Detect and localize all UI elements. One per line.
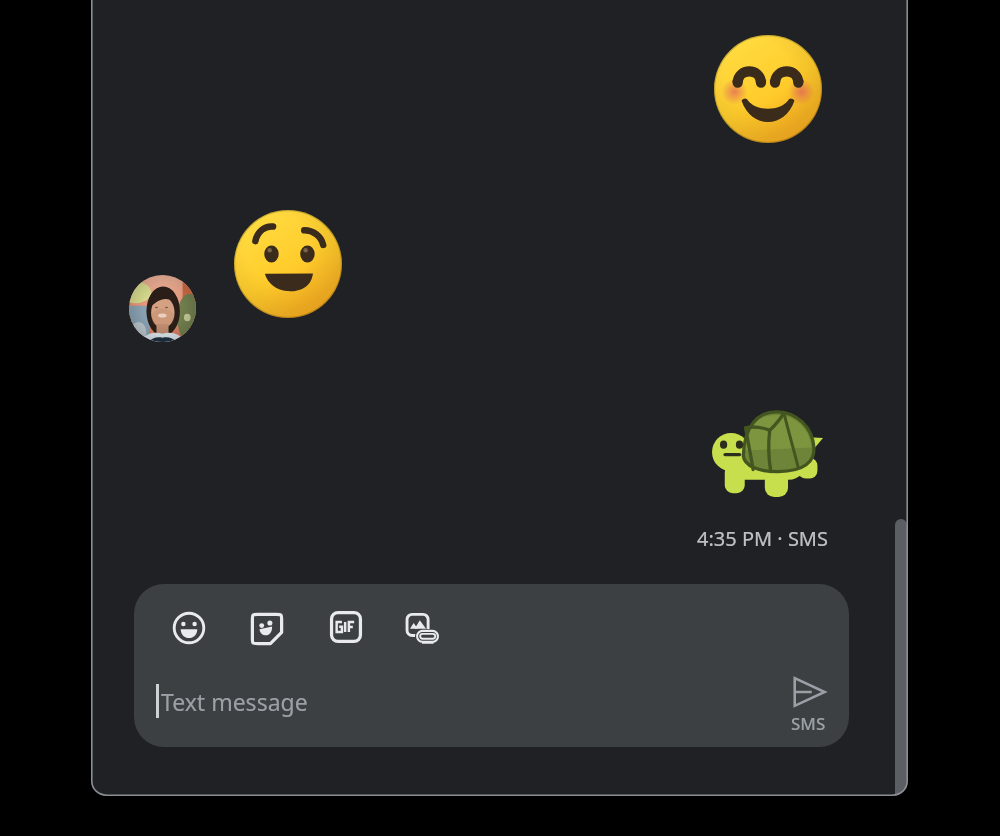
button[interactable]: Message: smiling face with smiling eyes [714,35,822,143]
button[interactable]: Message: turtle [712,411,823,497]
button[interactable]: Insert GIF [322,603,370,651]
button[interactable]: Send SMS [758,677,849,745]
button[interactable]: Insert sticker [243,605,291,653]
staticText: Text message [161,686,308,717]
button[interactable]: Message: slightly smiling face [234,210,342,318]
button[interactable]: Text message [156,670,716,732]
button[interactable]: Attach file [398,604,446,652]
staticText: SMS [791,712,826,735]
button[interactable]: Insert emoji [165,604,213,652]
button[interactable]: Contact photo [129,275,196,342]
staticText: 4:35 PM · SMS [697,525,828,552]
